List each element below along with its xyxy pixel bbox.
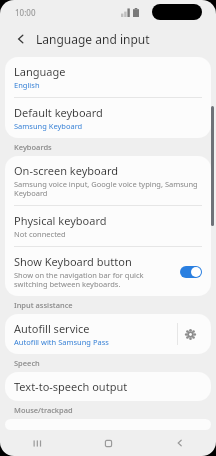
staticText: Mouse/trackpad bbox=[14, 405, 73, 415]
button[interactable]: On-screen keyboard bbox=[5, 156, 211, 205]
button[interactable]: Show Keyboard button bbox=[5, 247, 211, 296]
button[interactable]: Autofill service bbox=[5, 314, 211, 354]
staticText: Keyboards bbox=[14, 142, 52, 152]
staticText: Samsung voice input, Google voice typing… bbox=[14, 179, 202, 198]
button[interactable]: Autofill settings bbox=[178, 322, 202, 346]
button[interactable]: Language bbox=[5, 57, 211, 97]
staticText: Samsung Keyboard bbox=[14, 121, 83, 131]
staticText: Physical keyboard bbox=[14, 213, 107, 228]
button[interactable]: Home bbox=[72, 430, 144, 456]
staticText: Input assistance bbox=[14, 300, 73, 310]
staticText: Default keyboard bbox=[14, 105, 103, 120]
button[interactable]: Default keyboard bbox=[5, 98, 211, 138]
button[interactable]: Physical keyboard bbox=[5, 206, 211, 246]
staticText: Show Keyboard button bbox=[14, 254, 132, 269]
staticText: English bbox=[14, 80, 40, 90]
staticText: Speech bbox=[14, 358, 40, 368]
button[interactable]: Back bbox=[144, 430, 216, 456]
staticText: Language and input bbox=[36, 31, 150, 47]
staticText: Autofill with Samsung Pass bbox=[14, 337, 109, 347]
button[interactable]: Text-to-speech output bbox=[5, 372, 211, 401]
staticText: Not connected bbox=[14, 229, 66, 239]
staticText: On-screen keyboard bbox=[14, 163, 119, 178]
staticText: Autofill service bbox=[14, 321, 90, 336]
staticText: Show on the navigation bar for quick swi… bbox=[14, 270, 176, 289]
button[interactable]: Recents bbox=[0, 430, 72, 456]
button[interactable]: Back bbox=[11, 29, 31, 49]
staticText: Language bbox=[14, 64, 66, 79]
staticText: Text-to-speech output bbox=[14, 379, 128, 394]
button[interactable]: Show Keyboard button toggle bbox=[180, 266, 202, 278]
staticText: 10:00 bbox=[15, 7, 36, 18]
